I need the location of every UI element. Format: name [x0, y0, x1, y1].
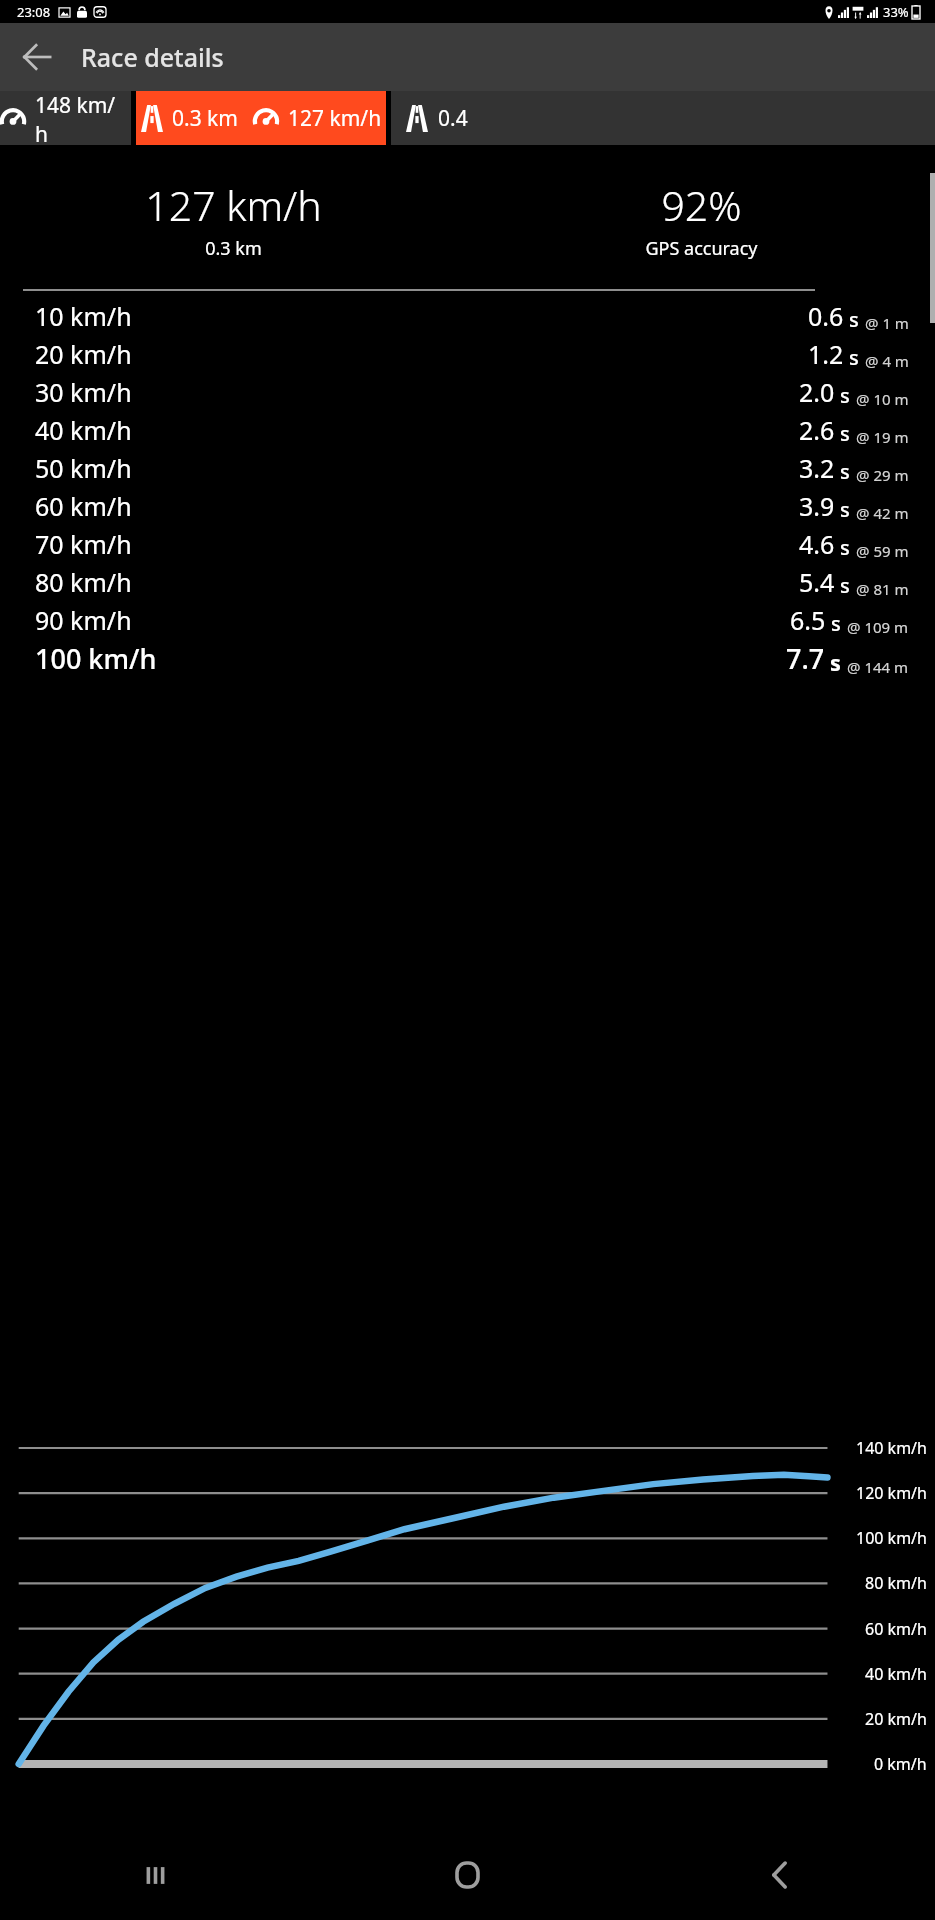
- staticText: 120 km/h: [856, 1482, 927, 1504]
- staticText: 40 km/h: [35, 413, 132, 447]
- staticText: s: [849, 344, 859, 371]
- button[interactable]: 0.4: [391, 91, 935, 145]
- staticText: @ 81 m: [856, 579, 909, 599]
- staticText: 0.6: [808, 299, 844, 333]
- staticText: 0 km/h: [874, 1753, 927, 1775]
- button[interactable]: Back: [623, 1830, 935, 1920]
- staticText: 70 km/h: [35, 527, 132, 561]
- staticText: 40 km/h: [865, 1663, 927, 1685]
- staticText: 127 km/h: [145, 177, 322, 233]
- button[interactable]: Back: [8, 28, 66, 86]
- staticText: s: [840, 382, 850, 409]
- button[interactable]: 30 km/h: [0, 373, 935, 411]
- staticText: 33%: [883, 3, 909, 21]
- staticText: @ 42 m: [856, 503, 909, 523]
- staticText: @ 4 m: [865, 351, 909, 371]
- staticText: s: [840, 496, 850, 523]
- button[interactable]: 10 km/h: [0, 297, 935, 335]
- staticText: @ 10 m: [856, 389, 909, 409]
- staticText: 20 km/h: [35, 337, 132, 371]
- button[interactable]: 40 km/h: [0, 411, 935, 449]
- button[interactable]: Home: [311, 1830, 623, 1920]
- staticText: s: [840, 458, 850, 485]
- button[interactable]: 90 km/h: [0, 601, 935, 639]
- staticText: 10 km/h: [35, 299, 132, 333]
- staticText: 23:08: [17, 3, 51, 21]
- staticText: 0.4: [438, 104, 468, 133]
- button[interactable]: 100 km/h: [0, 639, 935, 677]
- staticText: s: [831, 610, 841, 637]
- staticText: 90 km/h: [35, 603, 132, 637]
- staticText: 3.2: [799, 451, 835, 485]
- staticText: s: [849, 306, 859, 333]
- staticText: 4.6: [799, 527, 835, 561]
- staticText: 127 km/h: [288, 104, 382, 133]
- staticText: s: [840, 420, 850, 447]
- staticText: 5.4: [799, 565, 835, 599]
- staticText: 92%: [661, 177, 742, 233]
- staticText: GPS accuracy: [645, 236, 758, 261]
- staticText: 100 km/h: [856, 1527, 927, 1549]
- staticText: @ 59 m: [856, 541, 909, 561]
- staticText: 60 km/h: [35, 489, 132, 523]
- staticText: @ 19 m: [856, 427, 909, 447]
- staticText: 50 km/h: [35, 451, 132, 485]
- staticText: 80 km/h: [865, 1572, 927, 1594]
- staticText: 100 km/h: [35, 640, 157, 677]
- staticText: 6.5: [790, 603, 826, 637]
- button[interactable]: 80 km/h: [0, 563, 935, 601]
- staticText: 148 km/h: [35, 91, 125, 145]
- staticText: 3.9: [799, 489, 835, 523]
- button[interactable]: 60 km/h: [0, 487, 935, 525]
- button[interactable]: 50 km/h: [0, 449, 935, 487]
- button[interactable]: Recent apps: [0, 1830, 311, 1920]
- button[interactable]: 20 km/h: [0, 335, 935, 373]
- staticText: 30 km/h: [35, 375, 132, 409]
- staticText: Race details: [81, 40, 224, 74]
- staticText: 0.3 km: [205, 236, 262, 261]
- staticText: 20 km/h: [865, 1708, 927, 1730]
- staticText: 7.7: [786, 640, 825, 677]
- button[interactable]: 0.3 km: [136, 91, 386, 145]
- staticText: 2.6: [799, 413, 835, 447]
- staticText: @ 144 m: [847, 657, 909, 677]
- staticText: @ 29 m: [856, 465, 909, 485]
- staticText: 80 km/h: [35, 565, 132, 599]
- staticText: s: [830, 648, 841, 677]
- button[interactable]: 148 km/h: [0, 91, 131, 145]
- staticText: s: [840, 572, 850, 599]
- staticText: 140 km/h: [856, 1437, 927, 1459]
- staticText: 2.0: [799, 375, 835, 409]
- staticText: @ 109 m: [847, 617, 909, 637]
- staticText: 0.3 km: [172, 104, 238, 133]
- staticText: 60 km/h: [865, 1618, 927, 1640]
- staticText: s: [840, 534, 850, 561]
- staticText: @ 1 m: [865, 313, 909, 333]
- staticText: 1.2: [808, 337, 844, 371]
- button[interactable]: 70 km/h: [0, 525, 935, 563]
